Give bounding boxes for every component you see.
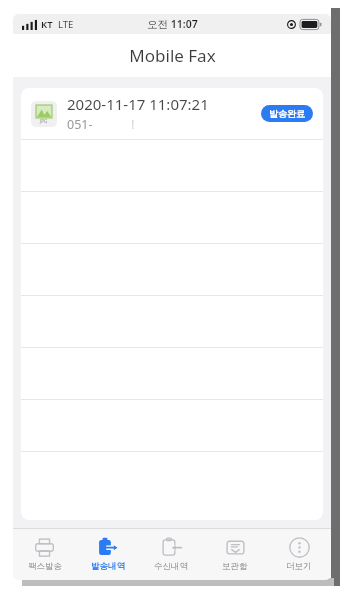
staticText: 수신내역 [154, 561, 188, 572]
button[interactable]: JPG [21, 88, 323, 139]
staticText: Mobile Fax [129, 44, 216, 67]
button[interactable]: 더보기 [267, 529, 331, 580]
staticText: 051- [67, 116, 93, 133]
staticText: JPG [40, 118, 48, 124]
staticText: 팩스발송 [28, 561, 62, 572]
button[interactable]: 발송내역 [76, 529, 139, 580]
staticText: 2020-11-17 11:07:21 [67, 94, 209, 114]
staticText: 발송완료 [269, 108, 305, 119]
staticText: 더보기 [286, 561, 312, 572]
staticText: KT [41, 18, 53, 31]
button[interactable]: 팩스발송 [13, 529, 76, 580]
staticText: 오전 11:07 [147, 17, 198, 31]
staticText: 발송내역 [91, 561, 125, 572]
staticText: ! [131, 116, 135, 133]
staticText: LTE [58, 18, 74, 31]
button[interactable]: 보관함 [203, 529, 267, 580]
staticText: 보관함 [222, 561, 248, 572]
button[interactable]: 수신내역 [139, 529, 203, 580]
button[interactable]: 발송완료 [261, 105, 313, 122]
